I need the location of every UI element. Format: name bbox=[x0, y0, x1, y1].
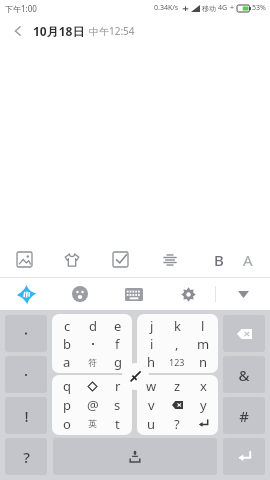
staticText: , bbox=[175, 335, 179, 353]
button[interactable]: Settings bbox=[161, 278, 215, 310]
staticText: ? bbox=[23, 447, 30, 467]
button[interactable]: Back bbox=[6, 19, 30, 43]
button[interactable]: Sticker bbox=[48, 242, 96, 277]
button[interactable]: Backspace bbox=[223, 315, 265, 352]
staticText: ? bbox=[174, 415, 180, 433]
button[interactable]: Hide keyboard bbox=[216, 278, 270, 310]
button[interactable]: Key group bbox=[137, 375, 218, 435]
button[interactable]: Bold bbox=[194, 242, 243, 277]
button[interactable]: Checklist bbox=[96, 242, 145, 277]
staticText: p bbox=[63, 396, 71, 414]
button[interactable]: ! bbox=[5, 397, 47, 434]
staticText: u bbox=[147, 415, 156, 433]
staticText: y bbox=[200, 396, 207, 414]
staticText: w bbox=[146, 377, 157, 395]
staticText: 0.34K/s bbox=[154, 3, 179, 13]
button[interactable]: Insert image bbox=[0, 242, 48, 277]
staticText: h bbox=[147, 353, 156, 371]
staticText: j bbox=[150, 317, 154, 335]
staticText: b bbox=[63, 335, 71, 353]
button[interactable]: Enter bbox=[223, 438, 265, 475]
button[interactable]: Font bbox=[243, 242, 270, 277]
staticText: 移动 bbox=[202, 4, 216, 13]
staticText: q bbox=[63, 377, 71, 395]
staticText: + bbox=[230, 3, 235, 13]
staticText: # bbox=[239, 406, 249, 426]
button[interactable]: Period bbox=[5, 356, 47, 393]
staticText: m bbox=[197, 335, 210, 353]
staticText: 下午1:00 bbox=[5, 3, 37, 14]
staticText: 123 bbox=[169, 356, 185, 368]
staticText: & bbox=[238, 365, 250, 385]
staticText: 英 bbox=[88, 418, 97, 429]
button[interactable]: Key group bbox=[137, 314, 218, 373]
staticText: a bbox=[63, 353, 71, 371]
staticText: f bbox=[115, 335, 120, 353]
staticText: A bbox=[243, 250, 253, 270]
button[interactable]: Comma bbox=[5, 315, 47, 352]
staticText: @ bbox=[87, 396, 99, 414]
button[interactable]: Input method bbox=[0, 278, 53, 310]
staticText: 符 bbox=[88, 357, 97, 368]
staticText: 4G bbox=[218, 3, 228, 13]
staticText: 10月18日 bbox=[33, 23, 85, 39]
button[interactable]: Handwriting input bbox=[122, 363, 149, 390]
button[interactable]: Paragraph bbox=[145, 242, 194, 277]
staticText: B bbox=[214, 250, 224, 270]
staticText: x bbox=[200, 377, 207, 395]
staticText: v bbox=[148, 396, 155, 414]
staticText: ! bbox=[24, 406, 29, 426]
staticText: k bbox=[174, 317, 181, 335]
button[interactable]: Space bbox=[53, 438, 217, 475]
staticText: d bbox=[89, 317, 97, 335]
staticText: s bbox=[114, 396, 121, 414]
staticText: 53% bbox=[252, 3, 266, 13]
button[interactable]: Key group bbox=[52, 375, 132, 435]
button[interactable]: Emoji bbox=[53, 278, 107, 310]
button[interactable]: ? bbox=[5, 438, 47, 475]
button[interactable]: & bbox=[223, 356, 265, 393]
button[interactable]: # bbox=[223, 397, 265, 434]
staticText: 中午12:54 bbox=[89, 24, 135, 38]
staticText: z bbox=[174, 377, 181, 395]
staticText: l bbox=[201, 317, 205, 335]
staticText: n bbox=[199, 353, 208, 371]
staticText: o bbox=[63, 415, 71, 433]
staticText: r bbox=[115, 377, 121, 395]
staticText: c bbox=[64, 317, 71, 335]
button[interactable]: Keyboard layout bbox=[107, 278, 161, 310]
staticText: t bbox=[115, 415, 120, 433]
button[interactable]: Key group bbox=[52, 314, 132, 373]
staticText: e bbox=[114, 317, 122, 335]
staticText: g bbox=[114, 353, 122, 371]
staticText: i bbox=[150, 335, 154, 353]
